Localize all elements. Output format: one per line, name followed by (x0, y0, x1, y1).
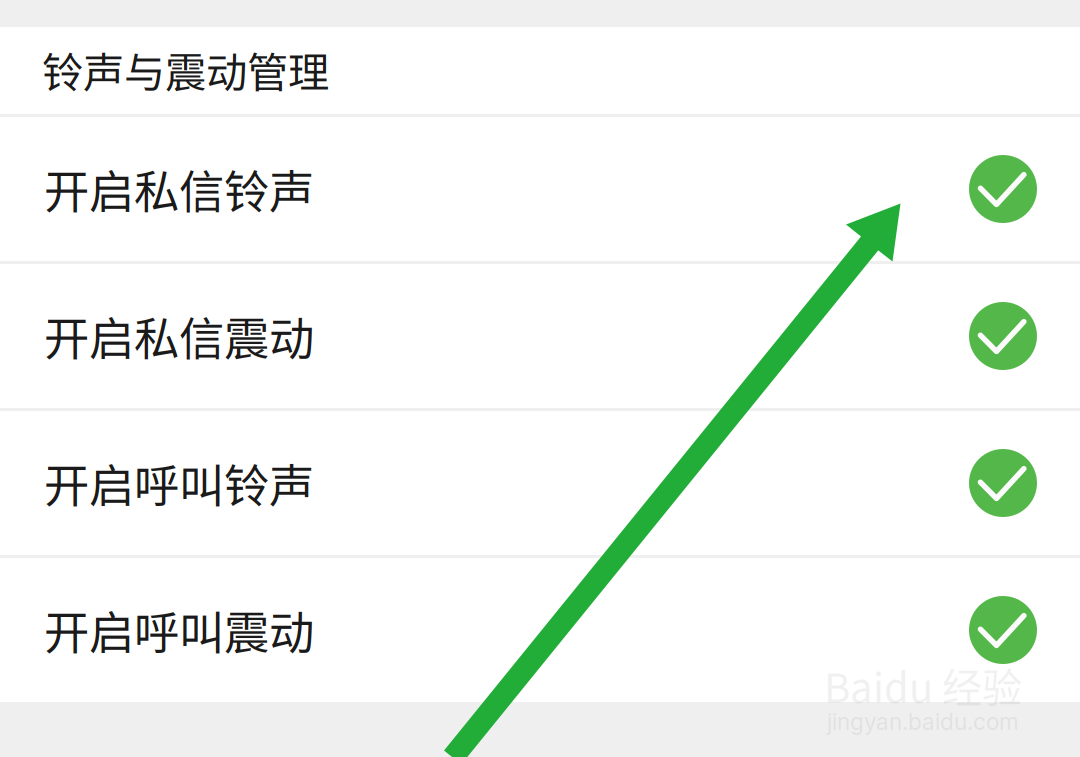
staticText: 开启私信铃声 (44, 156, 314, 222)
staticText: 开启呼叫铃声 (44, 450, 314, 516)
button[interactable]: 开启呼叫震动 (0, 558, 1080, 702)
button[interactable]: 开启私信铃声 (0, 117, 1080, 261)
staticText: Baidu 经验 (824, 656, 1022, 714)
staticText: 铃声与震动管理 (42, 40, 329, 99)
button[interactable]: 开启呼叫铃声 (0, 411, 1080, 555)
staticText: jingyan.baidu.com (827, 708, 1019, 735)
staticText: 开启私信震动 (44, 303, 314, 369)
button[interactable]: 开启私信震动 (0, 264, 1080, 408)
staticText: 开启呼叫震动 (44, 597, 314, 663)
